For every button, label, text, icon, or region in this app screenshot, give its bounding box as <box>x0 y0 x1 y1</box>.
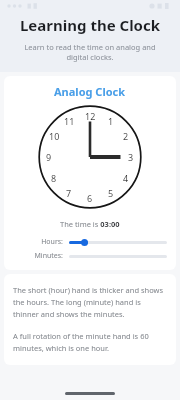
staticText: The time is 03:00 <box>60 219 120 229</box>
staticText: 5 <box>108 187 114 199</box>
staticText: Minutes: <box>13 251 63 261</box>
staticText: 4 <box>123 172 129 184</box>
staticText: 12 <box>85 110 96 122</box>
other: Analog clock showing three o'clock <box>38 105 142 209</box>
staticText: 1 <box>108 115 114 127</box>
button[interactable]: The short (hour) hand is thicker and sho… <box>4 274 176 365</box>
button[interactable]: Hours: <box>4 237 176 247</box>
button[interactable]: Analog Clock <box>4 76 176 270</box>
staticText: 9 <box>46 151 52 163</box>
staticText: 11 <box>64 115 75 127</box>
staticText: 8 <box>51 172 57 184</box>
staticText: Learning the Clock <box>0 15 180 35</box>
button[interactable]: Minutes: <box>4 251 176 261</box>
staticText: Learn to read the time on analog and dig… <box>14 42 166 62</box>
staticText: 10 <box>49 130 60 142</box>
staticText: 3 <box>128 151 134 163</box>
staticText: 6 <box>87 192 93 204</box>
staticText: Analog Clock <box>54 84 126 99</box>
staticText: 2 <box>123 130 129 142</box>
staticText: 7 <box>66 187 72 199</box>
staticText: The short (hour) hand is thicker and sho… <box>13 285 167 320</box>
staticText: Hours: <box>13 237 63 247</box>
staticText: A full rotation of the minute hand is 60… <box>13 331 167 354</box>
